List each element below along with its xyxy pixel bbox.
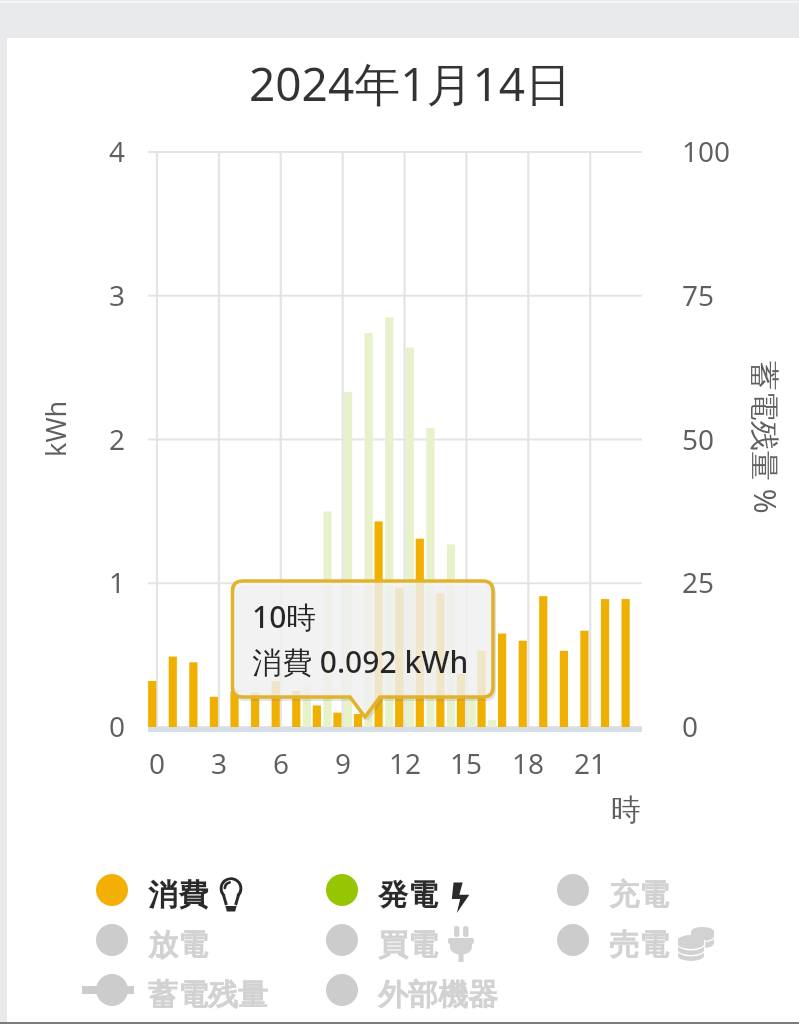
staticText: 9 (335, 744, 352, 782)
staticText: 充電 (609, 876, 669, 914)
staticText: 18 (512, 744, 545, 782)
staticText: 蓄電残量 % (746, 361, 786, 514)
staticText: 4 (109, 132, 126, 170)
button[interactable]: 買電 (312, 915, 480, 965)
staticText: 21 (574, 744, 607, 782)
staticText: 0 (149, 744, 166, 782)
staticText: 放電 (148, 926, 208, 964)
staticText: 2024年1月14日 (249, 52, 572, 115)
staticText: 25 (682, 563, 715, 601)
staticText: 2 (109, 420, 126, 458)
staticText: kWh (37, 400, 74, 457)
staticText: 消費 0.092 kWh (252, 641, 469, 682)
staticText: 6 (273, 744, 290, 782)
staticText: 売電 (609, 926, 669, 964)
staticText: 15 (450, 744, 483, 782)
button[interactable]: 放電 (82, 915, 208, 965)
staticText: 消費 (148, 876, 208, 914)
staticText: 買電 (378, 926, 438, 964)
staticText: 50 (682, 420, 715, 458)
button[interactable]: 売電 (543, 915, 711, 965)
button[interactable]: 充電 (543, 865, 669, 915)
staticText: 10時 (252, 596, 317, 637)
button[interactable]: 発電 (312, 865, 480, 915)
staticText: 時 (611, 791, 641, 829)
staticText: 外部機器 (378, 976, 498, 1014)
staticText: 3 (211, 744, 228, 782)
staticText: 蓄電残量 (148, 976, 268, 1014)
staticText: 75 (682, 276, 715, 314)
staticText: 発電 (378, 876, 438, 914)
button[interactable]: 外部機器 (312, 965, 498, 1015)
staticText: 100 (682, 132, 731, 170)
button[interactable]: 蓄電残量 (82, 965, 268, 1015)
staticText: 0 (682, 707, 699, 745)
button[interactable]: 消費 (82, 865, 250, 915)
staticText: 1 (109, 563, 126, 601)
staticText: 12 (389, 744, 422, 782)
staticText: 0 (109, 707, 126, 745)
staticText: 3 (109, 276, 126, 314)
